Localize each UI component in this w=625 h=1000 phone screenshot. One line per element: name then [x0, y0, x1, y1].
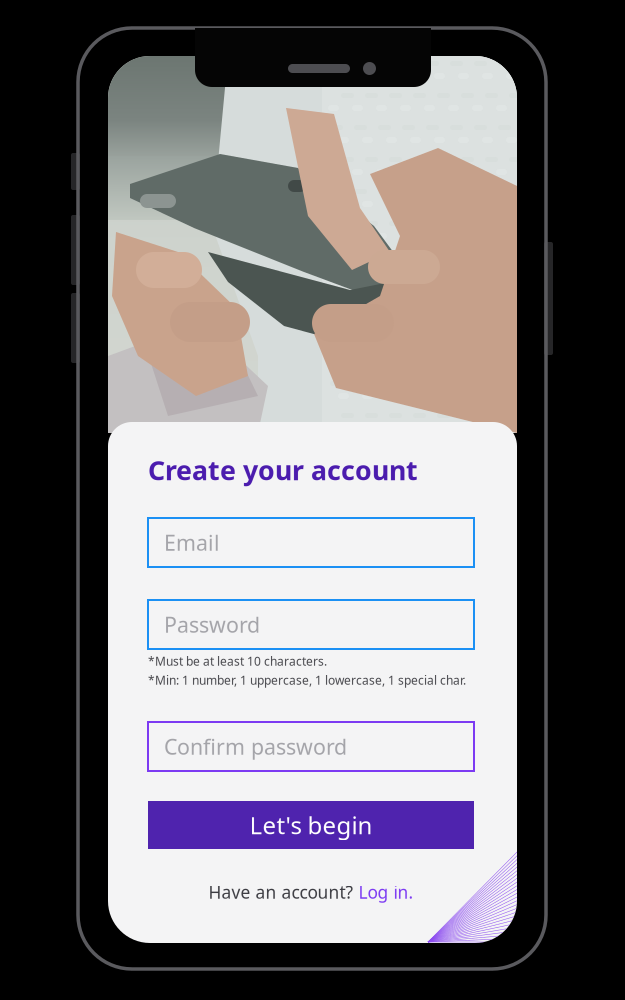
staticText: Confirm password	[164, 732, 347, 761]
button[interactable]: Log in.	[358, 880, 413, 903]
staticText: Have an account?	[208, 880, 358, 903]
staticText: Create your account	[148, 452, 418, 488]
staticText: Password	[164, 610, 260, 639]
staticText: *Min: 1 number, 1 uppercase, 1 lowercase…	[148, 672, 466, 688]
staticText: *Must be at least 10 characters.	[148, 653, 327, 669]
button[interactable]: Let's begin	[148, 801, 474, 849]
staticText: Let's begin	[249, 809, 372, 841]
button[interactable]: Password	[148, 600, 474, 649]
staticText: Email	[164, 528, 220, 557]
button[interactable]: Email	[148, 518, 474, 567]
staticText: Log in.	[358, 880, 413, 903]
button[interactable]: Confirm password	[148, 722, 474, 771]
